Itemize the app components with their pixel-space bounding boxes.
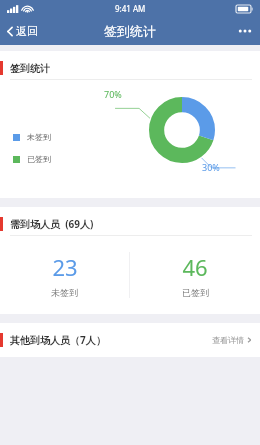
button[interactable]: 23 [0, 252, 129, 298]
staticText: 需到场人员 (69人) [10, 217, 94, 231]
button[interactable]: 返回 [7, 17, 38, 45]
staticText: 其他到场人员（7人） [10, 333, 106, 347]
staticText: 23 [52, 252, 78, 282]
button[interactable]: 46 [130, 252, 260, 298]
staticText: 签到统计 [104, 23, 156, 39]
staticText: 未签到 [27, 132, 51, 142]
button[interactable]: More options [238, 17, 252, 45]
staticText: 46 [182, 252, 208, 282]
staticText: 9:41 AM [115, 3, 146, 14]
staticText: 查看详情 [212, 335, 244, 345]
staticText: 返回 [16, 24, 38, 38]
staticText: 已签到 [27, 154, 51, 164]
staticText: 70% [104, 88, 122, 100]
staticText: 已签到 [182, 287, 209, 298]
staticText: 30% [202, 161, 220, 173]
staticText: 未签到 [51, 287, 78, 298]
staticText: 签到统计 [10, 62, 50, 75]
button[interactable]: 查看详情 [212, 335, 252, 345]
